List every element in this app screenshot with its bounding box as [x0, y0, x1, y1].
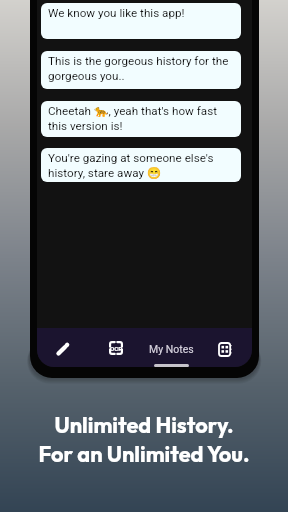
staticText: Cheetah 🐆, yeah that's how fast this ver…: [48, 104, 235, 133]
staticText: Unlimited History. For an Unlimited You.: [0, 411, 288, 468]
button[interactable]: Notes grid: [212, 336, 238, 362]
staticText: OCR: [110, 345, 123, 352]
staticText: We know you like this app!: [48, 6, 185, 20]
button[interactable]: Cheetah 🐆, yeah that's how fast this ver…: [41, 101, 241, 137]
button[interactable]: This is the gorgeous history for the gor…: [41, 51, 241, 89]
staticText: You're gazing at someone else's history,…: [48, 151, 235, 180]
button[interactable]: My Notes: [136, 336, 206, 362]
button[interactable]: OCR scan: [103, 335, 129, 361]
button[interactable]: New note: [49, 336, 75, 362]
button[interactable]: You're gazing at someone else's history,…: [41, 148, 241, 182]
button[interactable]: We know you like this app!: [41, 3, 241, 39]
staticText: This is the gorgeous history for the gor…: [48, 54, 235, 83]
staticText: My Notes: [149, 343, 194, 355]
